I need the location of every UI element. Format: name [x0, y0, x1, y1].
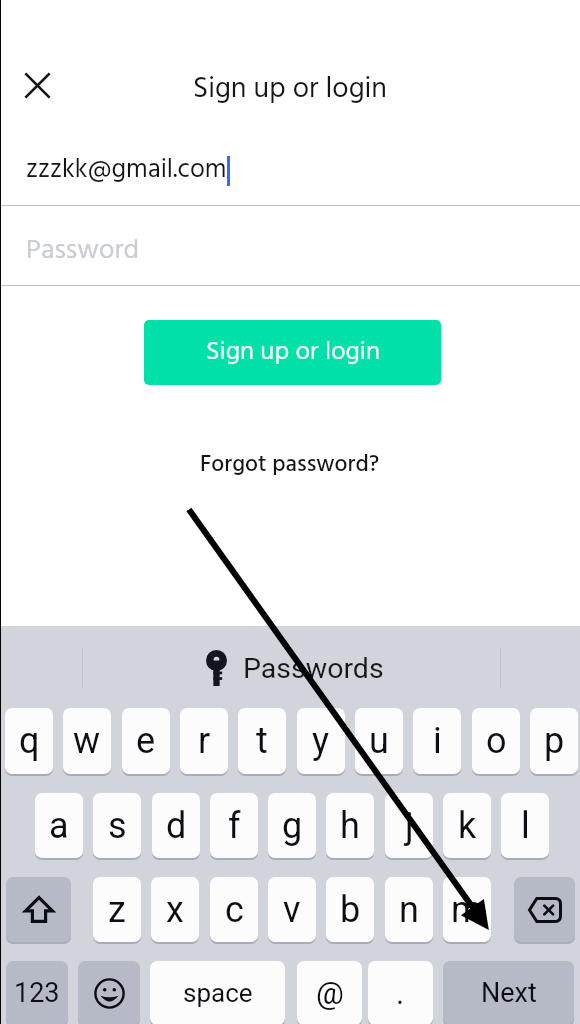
button[interactable]: k: [443, 793, 491, 858]
button[interactable]: Backspace: [514, 877, 575, 942]
staticText: Sign up or login: [193, 66, 388, 112]
button[interactable]: o: [472, 708, 520, 774]
staticText: n: [399, 889, 419, 931]
staticText: 123: [14, 977, 60, 1009]
button[interactable]: l: [501, 793, 549, 858]
staticText: w: [73, 720, 101, 762]
staticText: Next: [481, 977, 537, 1009]
staticText: g: [282, 805, 303, 847]
button[interactable]: w: [63, 708, 111, 774]
staticText: zzzkk@gmail.com: [26, 149, 227, 191]
staticText: x: [166, 889, 184, 931]
button[interactable]: t: [238, 708, 286, 774]
staticText: Password: [26, 229, 139, 273]
button[interactable]: 123: [6, 961, 68, 1024]
button[interactable]: u: [355, 708, 403, 774]
staticText: @: [316, 975, 344, 1011]
staticText: z: [108, 889, 126, 931]
staticText: y: [312, 720, 330, 762]
staticText: c: [225, 889, 244, 931]
button[interactable]: @: [297, 961, 362, 1024]
button[interactable]: m: [443, 877, 491, 942]
button[interactable]: x: [151, 877, 199, 942]
staticText: Forgot password?: [200, 447, 380, 484]
button[interactable]: Forgot password?: [190, 441, 390, 490]
staticText: k: [458, 805, 477, 847]
staticText: v: [283, 889, 301, 931]
button[interactable]: i: [413, 708, 461, 774]
button[interactable]: Passwords: [206, 650, 384, 686]
button[interactable]: Sign up or login: [144, 320, 441, 385]
button[interactable]: q: [5, 708, 53, 774]
button[interactable]: Shift: [6, 877, 71, 942]
staticText: m: [451, 889, 483, 931]
staticText: l: [521, 805, 530, 847]
button[interactable]: e: [122, 708, 170, 774]
button[interactable]: Emoji: [78, 961, 140, 1024]
staticText: i: [433, 720, 442, 762]
button[interactable]: n: [385, 877, 433, 942]
button[interactable]: f: [210, 793, 258, 858]
button[interactable]: Next: [443, 961, 574, 1024]
staticText: o: [486, 720, 507, 762]
staticText: f: [228, 805, 241, 847]
staticText: h: [340, 805, 360, 847]
button[interactable]: s: [93, 793, 141, 858]
button[interactable]: p: [530, 708, 578, 774]
staticText: Passwords: [243, 652, 384, 685]
staticText: s: [108, 805, 127, 847]
button[interactable]: .: [368, 961, 433, 1024]
button[interactable]: v: [268, 877, 316, 942]
staticText: d: [166, 805, 187, 847]
button[interactable]: r: [180, 708, 228, 774]
staticText: Sign up or login: [206, 332, 380, 374]
staticText: p: [544, 720, 565, 762]
staticText: e: [136, 720, 156, 762]
button[interactable]: j: [385, 793, 433, 858]
staticText: r: [198, 720, 211, 762]
staticText: space: [183, 978, 253, 1008]
staticText: j: [405, 805, 414, 847]
staticText: a: [49, 805, 69, 847]
staticText: t: [256, 720, 268, 762]
staticText: q: [19, 720, 40, 762]
button[interactable]: Close: [15, 63, 60, 108]
button[interactable]: c: [210, 877, 258, 942]
staticText: b: [340, 889, 361, 931]
button[interactable]: h: [326, 793, 374, 858]
button[interactable]: a: [35, 793, 83, 858]
button[interactable]: z: [93, 877, 141, 942]
button[interactable]: b: [326, 877, 374, 942]
staticText: .: [396, 975, 405, 1011]
button[interactable]: y: [297, 708, 345, 774]
button[interactable]: space: [150, 961, 285, 1024]
staticText: u: [369, 720, 389, 762]
button[interactable]: g: [268, 793, 316, 858]
button[interactable]: d: [152, 793, 200, 858]
